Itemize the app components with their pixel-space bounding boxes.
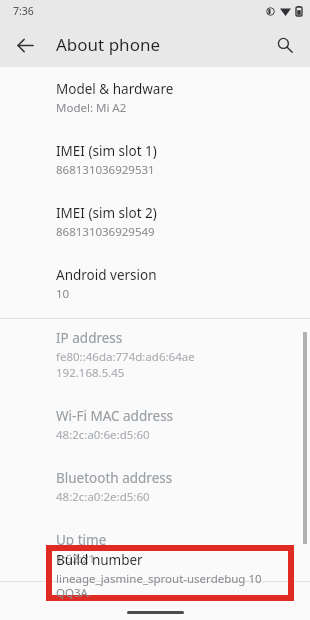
staticText: IMEI (sim slot 2) [56, 204, 157, 222]
staticText: Bluetooth address [56, 469, 173, 487]
button[interactable]: Wi-Fi MAC address [0, 397, 310, 459]
staticText: Android version [56, 266, 157, 284]
staticText: 48:2c:a0:2e:d5:60 [56, 489, 150, 505]
staticText: IMEI (sim slot 1) [56, 142, 157, 160]
button[interactable]: Model & hardware [0, 70, 310, 132]
button[interactable]: IMEI (sim slot 2) [0, 194, 310, 256]
staticText: IP address [56, 329, 123, 347]
button[interactable]: Search [266, 26, 304, 64]
staticText: 7:36 [13, 4, 34, 18]
staticText: 48:2c:a0:6e:d5:60 [56, 427, 150, 443]
staticText: 10 [56, 286, 70, 302]
button[interactable]: Back [6, 26, 44, 64]
staticText: Build number [56, 551, 143, 569]
button[interactable]: IP address [0, 319, 310, 397]
staticText: About phone [56, 33, 161, 56]
staticText: 1:52:21 [56, 551, 96, 567]
button[interactable]: Up time [0, 521, 310, 581]
staticText: 868131036929531 [56, 162, 155, 178]
staticText: Model & hardware [56, 80, 174, 98]
staticText: fe80::46da:774d:ad6:64ae [56, 349, 195, 365]
staticText: 868131036929549 [56, 224, 155, 240]
button[interactable]: Build number [46, 545, 294, 601]
staticText: Wi-Fi MAC address [56, 407, 174, 425]
staticText: Model: Mi A2 [56, 100, 127, 116]
staticText: Up time [56, 531, 107, 549]
button[interactable]: Bluetooth address [0, 459, 310, 521]
button[interactable]: IMEI (sim slot 1) [0, 132, 310, 194]
button[interactable]: Android version [0, 256, 310, 318]
staticText: lineage_jasmine_sprout-userdebug 10 QQ3A… [56, 571, 288, 600]
staticText: 192.168.5.45 [56, 365, 125, 381]
